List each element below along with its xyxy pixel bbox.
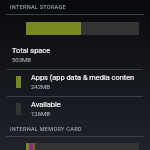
staticText: 503MB	[12, 56, 32, 63]
staticText: 126MB	[31, 110, 51, 117]
staticText: INTERNAL MEMORY CARD	[10, 126, 82, 133]
staticText: INTERNAL STORAGE	[10, 4, 66, 11]
button[interactable]: Apps (app data & media content)	[0, 70, 150, 96]
staticText: Apps (app data & media content)	[31, 73, 134, 82]
button[interactable]: Available	[0, 97, 150, 123]
staticText: Available	[31, 100, 61, 109]
staticText: Total space	[12, 46, 51, 55]
staticText: 242MB	[31, 83, 51, 90]
